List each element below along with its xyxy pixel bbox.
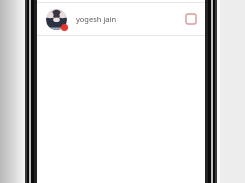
button[interactable]: Select yogesh jain bbox=[185, 13, 197, 25]
staticText: yogesh jain bbox=[76, 14, 117, 24]
button[interactable]: yogesh jain bbox=[37, 3, 205, 35]
